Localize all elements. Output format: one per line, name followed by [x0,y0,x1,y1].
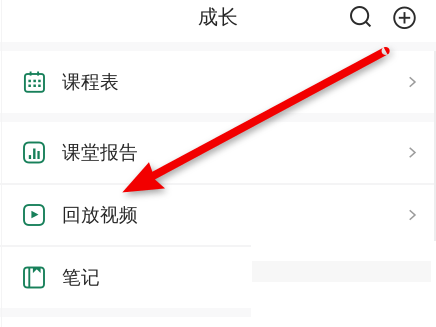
button[interactable]: 添加 [384,0,424,38]
staticText: 课堂报告 [62,141,138,164]
button[interactable]: 搜索 [341,0,381,38]
staticText: 笔记 [62,266,100,289]
staticText: 课程表 [62,70,119,93]
button[interactable]: 课堂报告 [0,122,436,183]
button[interactable]: 回放视频 [0,185,436,245]
staticText: 成长 [198,5,238,29]
button[interactable]: 课程表 [0,51,436,113]
staticText: 回放视频 [62,203,138,226]
button[interactable]: 笔记 [0,247,436,308]
